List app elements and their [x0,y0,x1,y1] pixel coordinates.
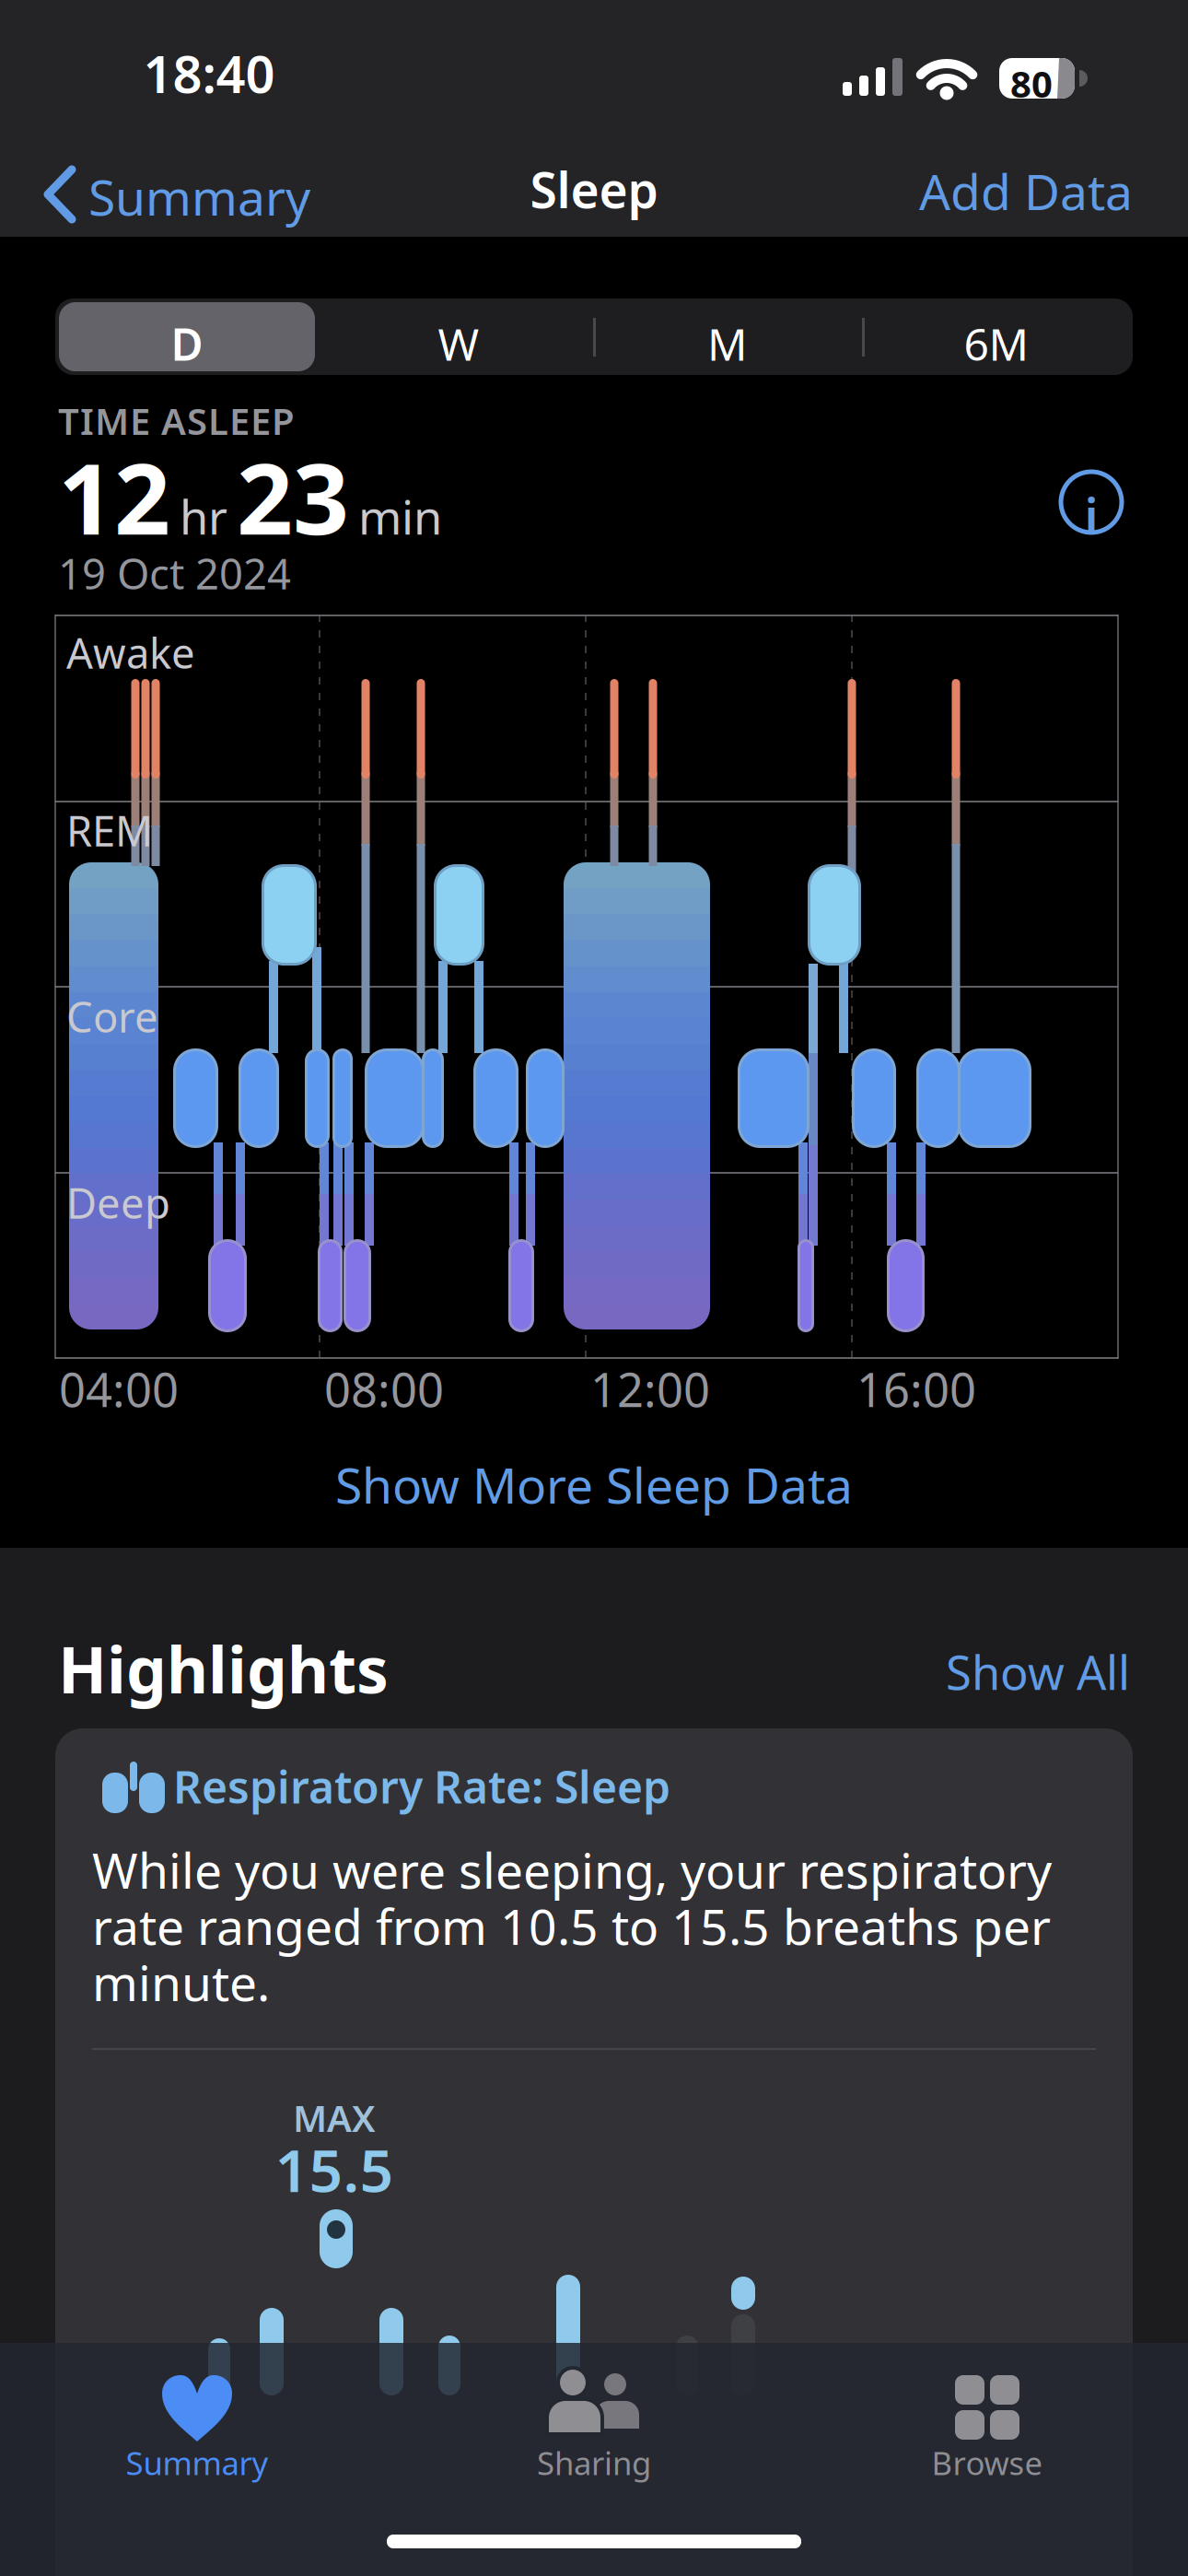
staticText: 16:00 [856,1358,976,1420]
staticText: 23 [237,431,349,562]
staticText: 80 [1010,59,1053,108]
staticText: 12 [58,431,170,562]
staticText: min [358,485,442,547]
staticText: REM [66,802,153,858]
button[interactable]: Respiratory Rate: Sleep [55,1728,1133,2576]
button[interactable]: W [0,0,269,59]
staticText: Sharing [537,2441,651,2484]
staticText: Deep [66,1175,170,1230]
button[interactable]: Show All [0,0,368,62]
staticText: 19 Oct 2024 [58,545,291,601]
staticText: M [707,314,748,373]
staticText: W [438,314,479,373]
button[interactable]: Browse [792,2343,1188,2536]
staticText: MAX [293,2093,376,2142]
staticText: Respiratory Rate: Sleep [173,1757,670,1816]
staticText: TIME ASLEEP [58,396,295,445]
button[interactable]: Summary [0,2343,396,2536]
staticText: Core [66,989,158,1044]
staticText: 04:00 [59,1358,179,1420]
staticText: Summary [126,2441,268,2484]
staticText: Summary [88,164,310,229]
staticText: Show All [946,1641,1130,1703]
button[interactable]: Sharing [396,2343,792,2536]
staticText: 6M [964,314,1029,373]
staticText: While you were sleeping, your respirator… [92,1837,1052,1902]
button[interactable]: Summary [44,164,348,225]
staticText: i [1084,483,1098,548]
staticText: minute. [92,1950,270,2015]
staticText: Awake [66,625,195,680]
button[interactable]: Add Data [0,0,368,65]
staticText: 15.5 [275,2130,394,2208]
staticText: hr [180,485,227,547]
button[interactable]: 6M [0,0,269,59]
button[interactable]: M [0,0,269,59]
staticText: 12:00 [590,1358,710,1420]
button[interactable]: D [59,302,315,371]
staticText: Sleep [530,157,658,222]
staticText: rate ranged from 10.5 to 15.5 breaths pe… [92,1893,1051,1959]
staticText: Show More Sleep Data [335,1452,853,1517]
staticText: 08:00 [324,1358,444,1420]
staticText: D [171,314,203,373]
staticText: 18:40 [143,39,275,107]
staticText: Add Data [919,158,1133,224]
button[interactable]: Show More Sleep Data [0,0,1188,65]
button[interactable]: i [1058,469,1124,535]
staticText: Highlights [58,1626,389,1711]
staticText: Browse [932,2441,1043,2484]
